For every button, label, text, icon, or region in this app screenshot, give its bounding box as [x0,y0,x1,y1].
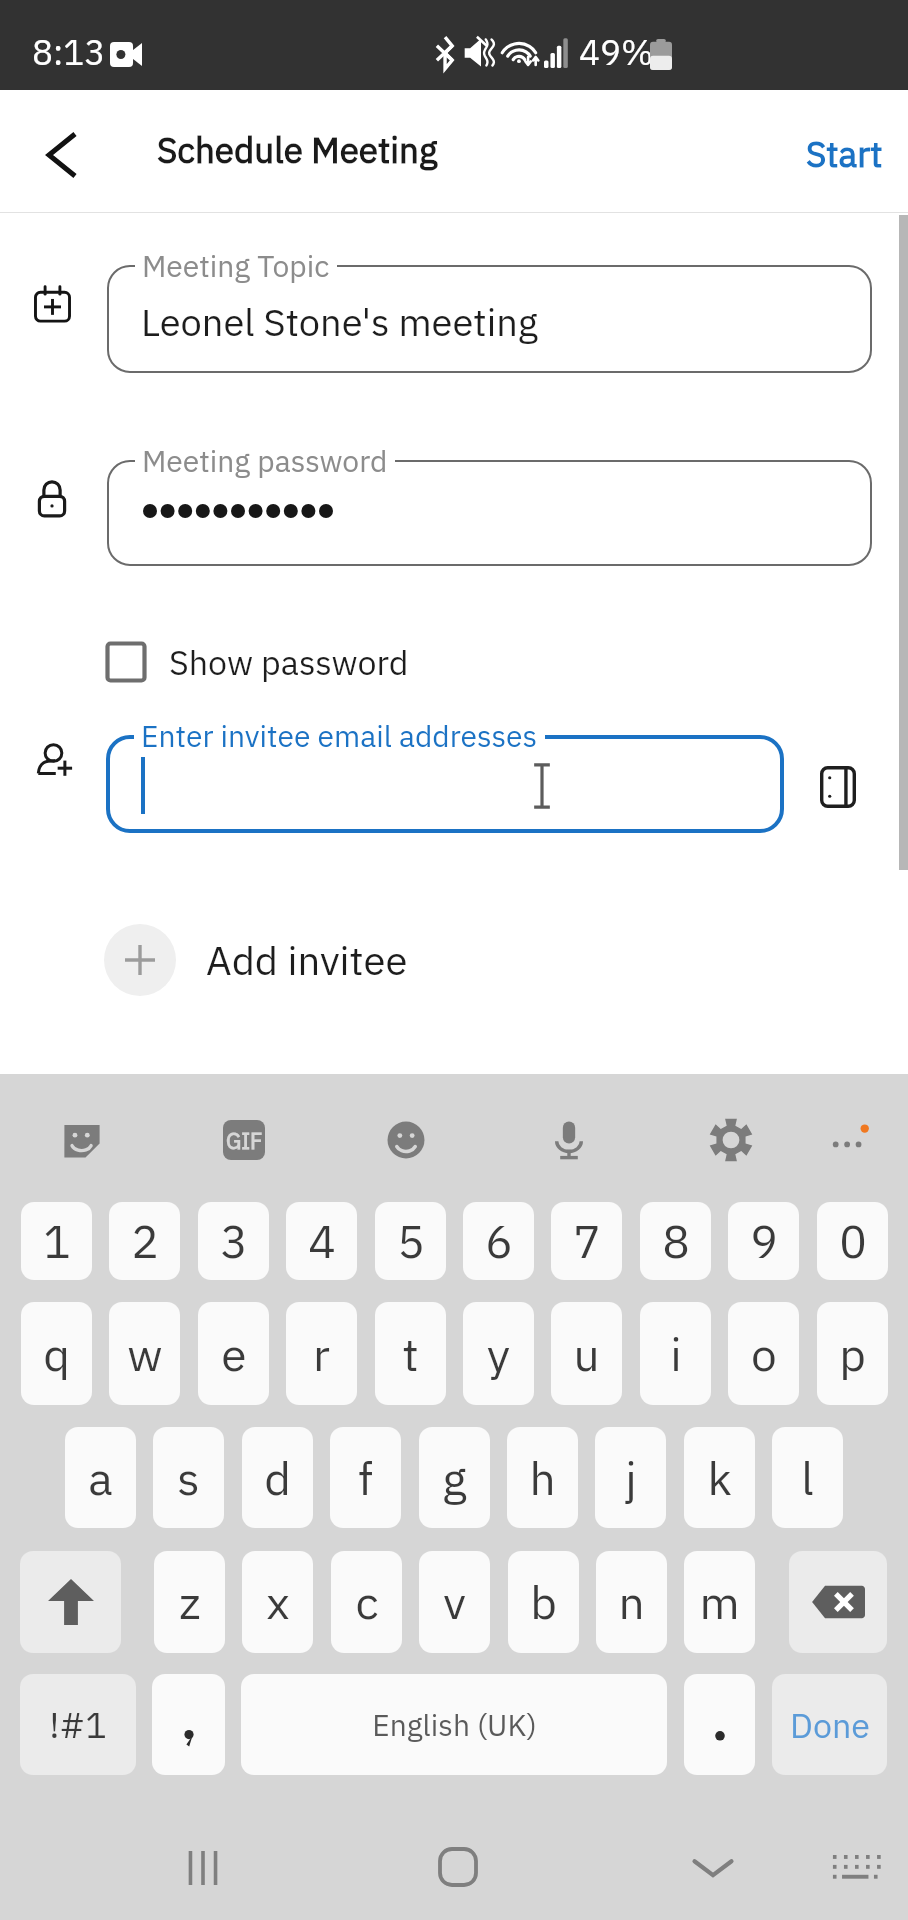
button[interactable]: 9 [728,1202,799,1280]
button[interactable]: More options [812,1104,884,1176]
staticText: !#1 [49,1701,107,1748]
staticText: Done [790,1703,870,1747]
button[interactable]: l [772,1427,843,1528]
button[interactable]: 7 [551,1202,622,1280]
button[interactable]: b [508,1551,579,1653]
staticText: d [264,1448,291,1508]
staticText: 8 [662,1211,690,1271]
staticText: 1 [43,1211,71,1271]
button[interactable]: Change keyboard [811,1823,899,1911]
staticText: English (UK) [372,1705,537,1744]
button[interactable]: !#1 [20,1674,136,1775]
staticText: 2 [131,1211,159,1271]
staticText: e [221,1324,247,1384]
staticText: n [618,1572,645,1632]
button[interactable]: k [684,1427,755,1528]
staticText: i [670,1324,682,1384]
button[interactable]: h [507,1427,578,1528]
staticText: Start [806,131,883,177]
staticText: l [801,1448,814,1508]
button[interactable]: w [109,1302,180,1405]
button[interactable]: Sticker [46,1104,118,1176]
button[interactable]: t [375,1302,446,1405]
button[interactable]: Start [789,118,899,190]
staticText: 49% [579,29,654,75]
button[interactable]: Home [414,1823,502,1911]
staticText: t [402,1324,419,1384]
button[interactable]: 5 [375,1202,446,1280]
button[interactable]: Show password [104,629,409,695]
staticText: Meeting Topic [142,246,330,285]
button[interactable]: v [419,1551,490,1653]
button[interactable]: Done [772,1674,887,1775]
staticText: Show password [169,640,409,684]
button[interactable]: Emoji [370,1104,442,1176]
button[interactable]: Voice input [533,1104,605,1176]
staticText: Meeting password [142,441,388,480]
staticText: x [266,1572,290,1632]
staticText: m [699,1572,740,1632]
button[interactable]: Shift [20,1551,121,1653]
button[interactable]: e [198,1302,269,1405]
staticText: b [530,1572,557,1632]
staticText: Leonel Stone's meeting [141,297,538,346]
button[interactable]: GIF [208,1104,280,1176]
button[interactable]: 1 [21,1202,92,1280]
button[interactable]: Settings [695,1104,767,1176]
button[interactable]: g [419,1427,490,1528]
button[interactable]: 6 [463,1202,534,1280]
staticText: 7 [573,1211,601,1271]
button[interactable]: 0 [817,1202,888,1280]
button[interactable]: i [640,1302,711,1405]
staticText: o [751,1324,777,1384]
button[interactable]: Backspace [789,1551,887,1653]
staticText: 0 [839,1211,867,1271]
button[interactable]: Add invitee [104,924,408,996]
button[interactable]: 8 [640,1202,711,1280]
button[interactable]: Recents [159,1824,247,1912]
button[interactable]: x [242,1551,313,1653]
staticText: q [43,1324,70,1384]
staticText: h [529,1448,556,1508]
staticText: k [707,1448,732,1508]
staticText: 6 [485,1211,513,1271]
button[interactable]: Period [684,1674,755,1775]
button[interactable]: s [153,1427,224,1528]
staticText: r [313,1324,330,1384]
staticText: 8:13 [32,29,106,75]
staticText: p [839,1324,866,1384]
button[interactable]: r [286,1302,357,1405]
button[interactable]: Navigate back [24,117,100,193]
button[interactable]: z [154,1551,225,1653]
button[interactable]: y [463,1302,534,1405]
staticText: g [442,1448,467,1508]
staticText: v [443,1572,466,1632]
button[interactable]: 4 [286,1202,357,1280]
staticText: Schedule Meeting [157,127,438,173]
button[interactable]: q [21,1302,92,1405]
button[interactable]: Open contacts [800,749,876,825]
button[interactable]: j [595,1427,666,1528]
button[interactable]: p [817,1302,888,1405]
staticText: s [177,1448,200,1508]
button[interactable]: n [596,1551,667,1653]
staticText: 4 [308,1211,336,1271]
button[interactable]: m [684,1551,755,1653]
button[interactable]: c [331,1551,402,1653]
staticText: f [358,1448,373,1508]
staticText: Enter invitee email addresses [141,716,538,755]
button[interactable]: d [242,1427,313,1528]
button[interactable]: Hide keyboard [669,1824,757,1912]
button[interactable]: 3 [198,1202,269,1280]
button[interactable]: o [728,1302,799,1405]
button[interactable]: a [65,1427,136,1528]
staticText: c [355,1572,379,1632]
button[interactable]: f [330,1427,401,1528]
button[interactable]: English (UK) [241,1674,667,1775]
button[interactable]: u [551,1302,622,1405]
staticText: GIF [226,1126,263,1155]
button[interactable]: 2 [109,1202,180,1280]
staticText: u [573,1324,600,1384]
button[interactable]: Comma [152,1674,225,1775]
staticText: y [487,1324,510,1384]
